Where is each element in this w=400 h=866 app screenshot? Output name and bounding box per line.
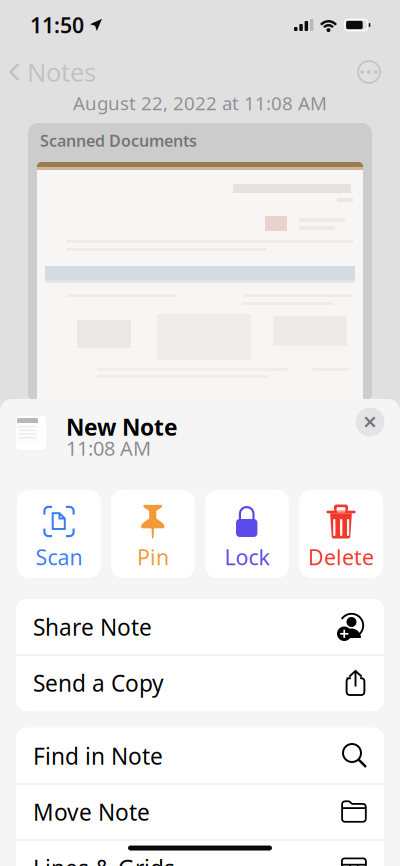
button[interactable]: Send a Copy: [16, 655, 384, 710]
button[interactable]: Close: [348, 400, 392, 444]
staticText: Pin: [137, 543, 169, 571]
button[interactable]: More: [349, 56, 389, 88]
staticText: New Note: [66, 412, 178, 442]
button[interactable]: Notes: [0, 51, 96, 93]
button[interactable]: Scan: [17, 490, 101, 578]
staticText: Move Note: [33, 797, 150, 827]
staticText: August 22, 2022 at 11:08 AM: [73, 91, 327, 115]
button[interactable]: Move Note: [16, 784, 384, 839]
staticText: Share Note: [33, 612, 152, 642]
staticText: Send a Copy: [33, 668, 164, 698]
staticText: Lock: [224, 543, 269, 571]
staticText: 11:50: [30, 11, 84, 39]
staticText: Scan: [35, 543, 82, 571]
staticText: Lines & Grids: [33, 853, 175, 866]
staticText: Find in Note: [33, 741, 163, 771]
button[interactable]: Lock: [205, 490, 289, 578]
button[interactable]: Lines & Grids: [16, 840, 384, 866]
button[interactable]: Delete: [299, 490, 383, 578]
staticText: Scanned Documents: [40, 130, 197, 151]
staticText: Notes: [27, 55, 96, 89]
staticText: Delete: [308, 543, 374, 571]
button[interactable]: Find in Note: [16, 728, 384, 783]
button[interactable]: Share Note: [16, 599, 384, 654]
staticText: 11:08 AM: [66, 435, 151, 461]
button[interactable]: Pin: [111, 490, 195, 578]
